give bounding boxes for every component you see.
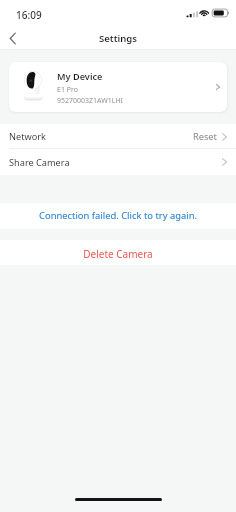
button[interactable]: Network — [0, 124, 236, 149]
staticText: 95270003Z1AW1LHI — [57, 96, 123, 106]
button[interactable]: Share Camera — [0, 149, 236, 175]
button[interactable]: Back — [0, 26, 26, 50]
staticText: Settings — [99, 32, 137, 45]
staticText: Network — [9, 130, 46, 143]
staticText: My Device — [57, 70, 103, 83]
button[interactable]: Delete Camera — [0, 240, 236, 265]
staticText: Reset — [193, 130, 217, 143]
button[interactable]: Connection failed. Click to try again. — [0, 203, 236, 229]
button[interactable]: My Device — [9, 62, 227, 112]
staticText: E1 Pro — [57, 85, 78, 95]
staticText: Delete Camera — [83, 247, 153, 261]
staticText: 16:09 — [16, 8, 42, 22]
staticText: Connection failed. Click to try again. — [39, 209, 197, 222]
staticText: Share Camera — [9, 156, 70, 169]
